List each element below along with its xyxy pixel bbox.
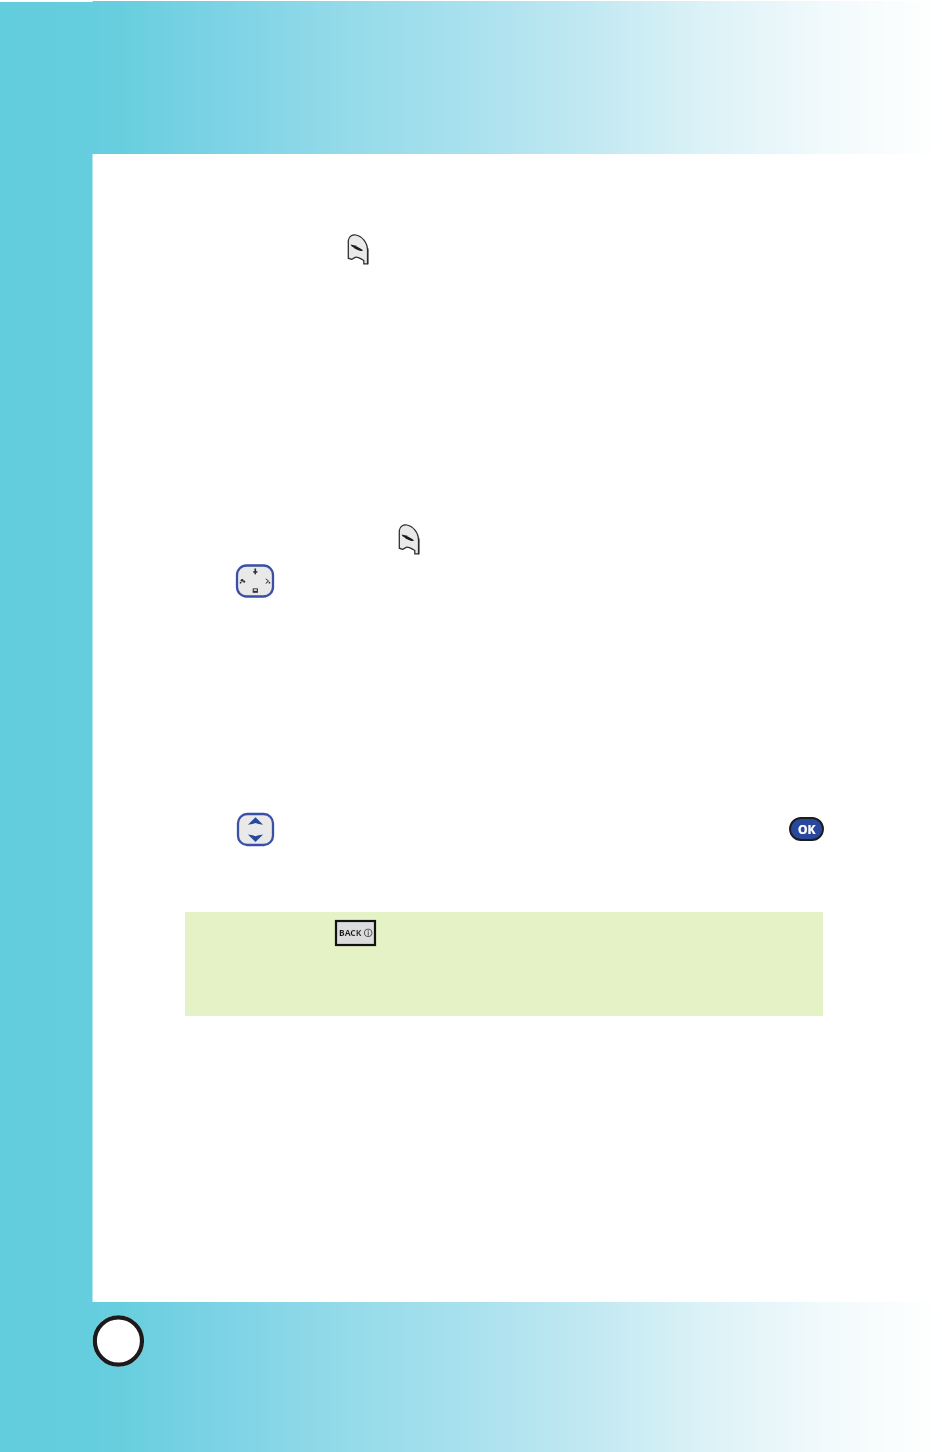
button[interactable]: Scroll up or down key	[238, 814, 273, 845]
button[interactable]: Right soft key	[398, 523, 422, 555]
button[interactable]: BACK ⓘ	[336, 921, 375, 945]
staticText: BACK ⓘ	[339, 927, 373, 939]
staticText: OK	[798, 821, 816, 837]
button[interactable]: Page number	[93, 1315, 144, 1366]
button[interactable]: Left soft key	[347, 233, 371, 265]
button[interactable]: Navigation pad	[237, 565, 273, 597]
button[interactable]: OK	[790, 818, 823, 840]
